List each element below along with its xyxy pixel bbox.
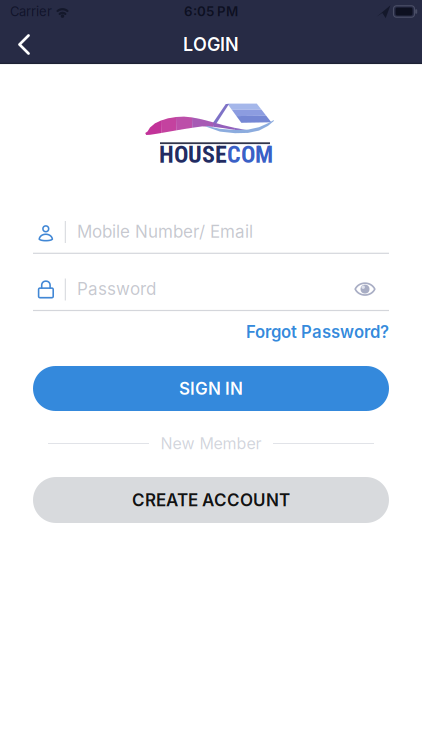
button[interactable]: CREATE ACCOUNT xyxy=(33,477,389,523)
button[interactable]: SIGN IN xyxy=(33,366,389,411)
staticText: SIGN IN xyxy=(179,378,243,399)
button[interactable]: Show password xyxy=(349,276,381,302)
staticText: LOGIN xyxy=(183,34,239,55)
staticText: 6:05 PM xyxy=(184,3,238,19)
staticText: CREATE ACCOUNT xyxy=(132,490,290,510)
staticText: HOUSE xyxy=(159,140,227,168)
button[interactable]: Forgot Password? xyxy=(149,319,389,345)
staticText: Mobile Number/ Email xyxy=(77,221,253,242)
staticText: Forgot Password? xyxy=(246,322,389,342)
staticText: Password xyxy=(77,278,156,299)
button[interactable]: Back xyxy=(2,24,46,64)
staticText: Carrier xyxy=(10,4,52,19)
staticText: COM xyxy=(227,140,273,168)
staticText: New Member xyxy=(160,434,261,453)
